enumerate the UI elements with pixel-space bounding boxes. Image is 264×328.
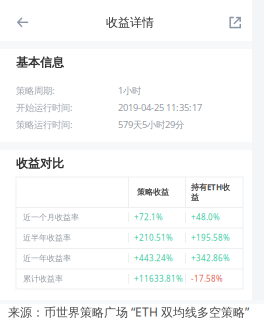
staticText: 近一个月收益率 [23,212,79,222]
staticText: 基本信息 [16,55,64,70]
button[interactable]: Back [0,0,46,41]
staticText: 579天5小时29分 [118,118,184,131]
staticText: 来源：币世界策略广场 “ETH 双均线多空策略” [8,304,249,320]
button[interactable]: Share [200,0,252,41]
staticText: 开始运行时间: [16,101,73,114]
staticText: +342.86% [191,253,230,263]
staticText: -17.58% [191,273,223,284]
staticText: 1小时 [118,84,141,97]
staticText: 近一年收益率 [23,253,71,263]
staticText: 收益详情 [106,15,154,30]
staticText: +210.51% [134,232,173,243]
staticText: 策略收益 [137,187,169,197]
staticText: 累计收益率 [23,274,63,284]
staticText: 近半年收益率 [23,233,71,243]
staticText: +48.0% [191,212,220,222]
staticText: +195.58% [191,232,230,243]
staticText: 2019-04-25 11:35:17 [118,101,202,114]
staticText: +72.1% [134,212,163,222]
staticText: 持有ETH收益 [191,182,230,202]
staticText: +11633.81% [134,273,183,284]
staticText: +443.24% [134,253,173,263]
staticText: 策略运行时间: [16,118,73,131]
staticText: 收益对比 [16,156,64,171]
staticText: 策略周期: [16,84,55,97]
